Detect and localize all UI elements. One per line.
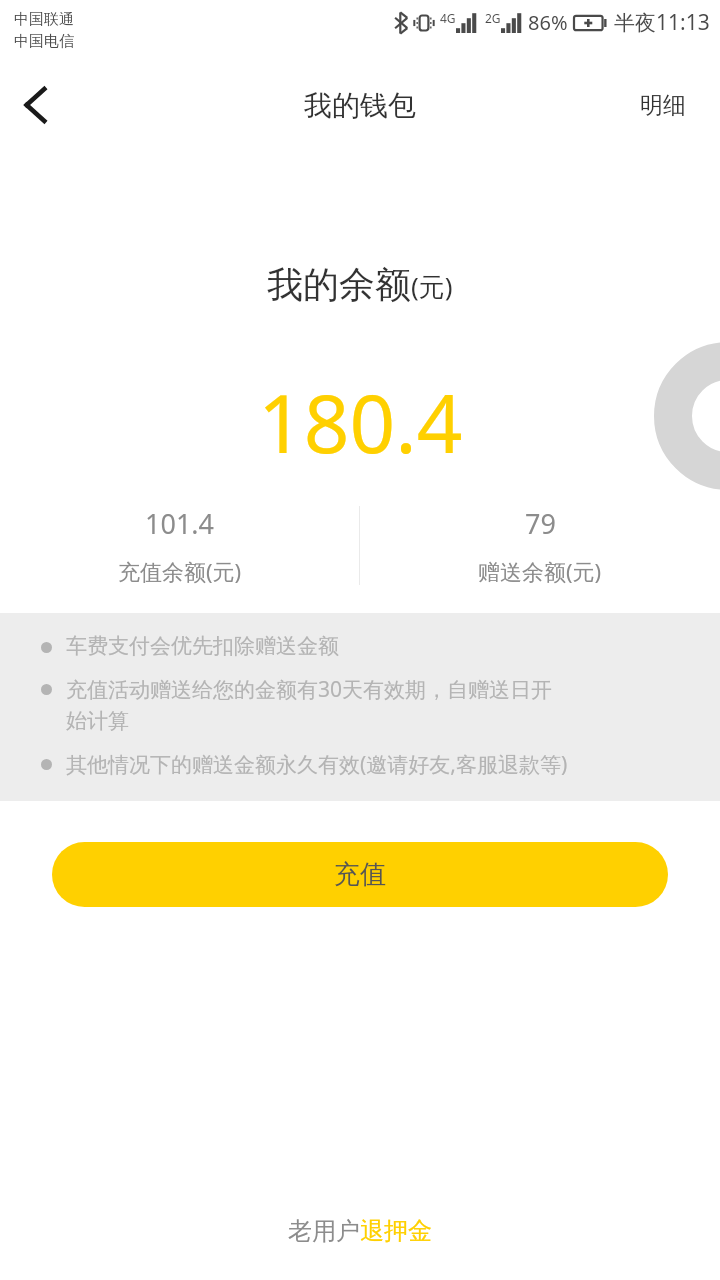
staticText: 明细	[640, 91, 686, 120]
staticText: 中国联通	[14, 10, 74, 29]
staticText: 充值活动赠送给您的金额有30天有效期，自赠送日开 始计算	[66, 675, 553, 734]
staticText: 180.4	[258, 367, 463, 476]
staticText: 半夜11:13	[614, 8, 710, 37]
staticText: 2G	[485, 10, 501, 26]
staticText: 我的余额	[267, 262, 411, 307]
staticText: 充值余额(元)	[118, 556, 242, 585]
staticText: 车费支付会优先扣除赠送金额	[66, 633, 339, 659]
staticText: 老用户退押金	[288, 1216, 432, 1246]
staticText: 中国电信	[14, 32, 74, 51]
staticText: 充值	[334, 858, 386, 891]
staticText: 4G	[440, 10, 456, 26]
button[interactable]: 老用户退押金	[0, 1202, 720, 1260]
staticText: 101.4	[145, 505, 215, 542]
staticText: 我的钱包	[304, 88, 416, 123]
staticText: 79	[525, 505, 556, 542]
button[interactable]: Back	[0, 69, 72, 141]
staticText: 赠送余额(元)	[478, 556, 602, 585]
button[interactable]: 明细	[606, 73, 720, 138]
staticText: 其他情况下的赠送金额永久有效(邀请好友,客服退款等)	[66, 750, 568, 779]
button[interactable]: 充值	[52, 842, 668, 907]
staticText: (元)	[411, 268, 453, 304]
staticText: 86%	[528, 9, 568, 36]
